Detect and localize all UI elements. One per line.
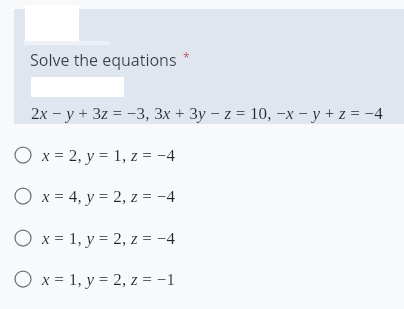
- button[interactable]: x = 2, y = 1, z = −4: [0, 138, 404, 172]
- staticText: x = 4, y = 2, z = −4: [42, 187, 176, 206]
- button[interactable]: x = 1, y = 2, z = −4: [0, 221, 404, 255]
- staticText: 2x − y + 3z = −3, 3x + 3y − z = 10, −x −…: [31, 104, 383, 123]
- button[interactable]: x = 1, y = 2, z = −1: [0, 262, 404, 296]
- staticText: x = 2, y = 1, z = −4: [42, 146, 176, 165]
- staticText: x = 1, y = 2, z = −4: [42, 229, 176, 248]
- staticText: x = 1, y = 2, z = −1: [42, 270, 176, 289]
- staticText: *: [183, 49, 190, 65]
- staticText: Solve the equations: [30, 49, 177, 71]
- button[interactable]: x = 4, y = 2, z = −4: [0, 179, 404, 213]
